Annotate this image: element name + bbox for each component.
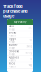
staticText: Pantry bbox=[9, 65, 16, 68]
staticText: Butter bbox=[9, 43, 18, 47]
staticText: 6 bbox=[30, 57, 31, 60]
staticText: 2 L bbox=[28, 26, 31, 29]
button[interactable]: Cheese bbox=[7, 50, 33, 56]
staticText: Pantry bbox=[9, 59, 16, 62]
staticText: Fridge bbox=[9, 47, 15, 50]
button[interactable]: Butter bbox=[7, 44, 33, 50]
staticText: 1 bbox=[30, 33, 31, 35]
staticText: 250g bbox=[26, 45, 31, 48]
staticText: My Pantry bbox=[14, 20, 26, 24]
staticText: purchase and bbox=[3, 9, 28, 14]
staticText: 12 bbox=[29, 39, 31, 42]
button[interactable]: Eggs bbox=[7, 37, 33, 44]
staticText: Fridge bbox=[9, 53, 15, 56]
staticText: Milk bbox=[9, 25, 14, 28]
staticText: Rice bbox=[9, 62, 16, 65]
button[interactable]: Bread bbox=[7, 31, 33, 37]
button[interactable]: Milk bbox=[7, 25, 33, 31]
staticText: Fridge bbox=[9, 40, 15, 43]
button[interactable]: Apples bbox=[7, 56, 33, 62]
staticText: Cheese bbox=[9, 50, 20, 53]
staticText: Track food bbox=[3, 4, 23, 9]
staticText: Fridge bbox=[9, 28, 15, 31]
staticText: Bread bbox=[9, 31, 17, 34]
staticText: 500g bbox=[25, 51, 31, 54]
staticText: 1kg bbox=[28, 64, 31, 66]
staticText: Apples bbox=[9, 56, 19, 59]
button[interactable]: Rice bbox=[7, 62, 33, 68]
staticText: Eggs bbox=[9, 37, 16, 40]
staticText: usage bbox=[3, 14, 14, 18]
staticText: Pantry bbox=[9, 34, 16, 37]
